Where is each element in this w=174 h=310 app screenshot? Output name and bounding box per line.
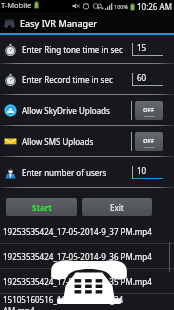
staticText: OFF	[143, 106, 155, 114]
staticText: OFF	[143, 137, 155, 145]
button[interactable]: Allow SkyDrive Uploads	[0, 95, 174, 125]
staticText: Enter Ring tone time in sec	[22, 44, 123, 55]
button[interactable]: Start	[6, 198, 77, 216]
staticText: Exit	[110, 202, 124, 213]
staticText: 19253535424_17-05-2014-9_37 PM.mp4	[3, 226, 152, 237]
button[interactable]: Enter Record time in sec	[0, 64, 174, 94]
staticText: Enter Record time in sec	[22, 74, 113, 85]
staticText: Allow SkyDrive Uploads	[22, 105, 110, 116]
staticText: 19253535424_17-05-2014-9_35 PM.mp4	[3, 276, 152, 287]
button[interactable]: Allow SMS Uploads	[0, 126, 174, 156]
staticText: 100%	[114, 3, 129, 10]
button[interactable]: 19253535424_17-05-2014-9_36 PM.mp4	[0, 244, 174, 268]
button[interactable]: Enter number of users	[0, 157, 174, 187]
button[interactable]: 19253535424_17-05-2014-9_35 PM.mp4	[0, 269, 174, 293]
staticText: Enter number of users	[22, 167, 107, 178]
staticText: 15	[137, 42, 147, 53]
staticText: Allow SMS Uploads	[22, 136, 94, 147]
button[interactable]: Enter Ring tone time in sec	[0, 35, 174, 63]
staticText: 10:26 AM	[137, 1, 172, 12]
staticText: Easy IVR Manager	[20, 17, 98, 29]
staticText: T-Mobile	[1, 0, 32, 10]
staticText: Start	[32, 202, 52, 213]
staticText: 19253535424_17-05-2014-9_36 PM.mp4	[3, 251, 152, 262]
staticText: 10	[137, 165, 147, 176]
staticText: 15105160516_16-05-2014-11_34	[3, 294, 124, 305]
staticText: AM.mp4	[3, 305, 35, 310]
button[interactable]: OFF	[135, 132, 163, 151]
button[interactable]: OFF	[135, 101, 163, 120]
button[interactable]: 19253535424_17-05-2014-9_37 PM.mp4	[0, 219, 174, 243]
button[interactable]: Exit	[82, 198, 152, 216]
button[interactable]: 15105160516_16-05-2014-11_34	[0, 294, 174, 310]
staticText: 60	[137, 72, 147, 83]
